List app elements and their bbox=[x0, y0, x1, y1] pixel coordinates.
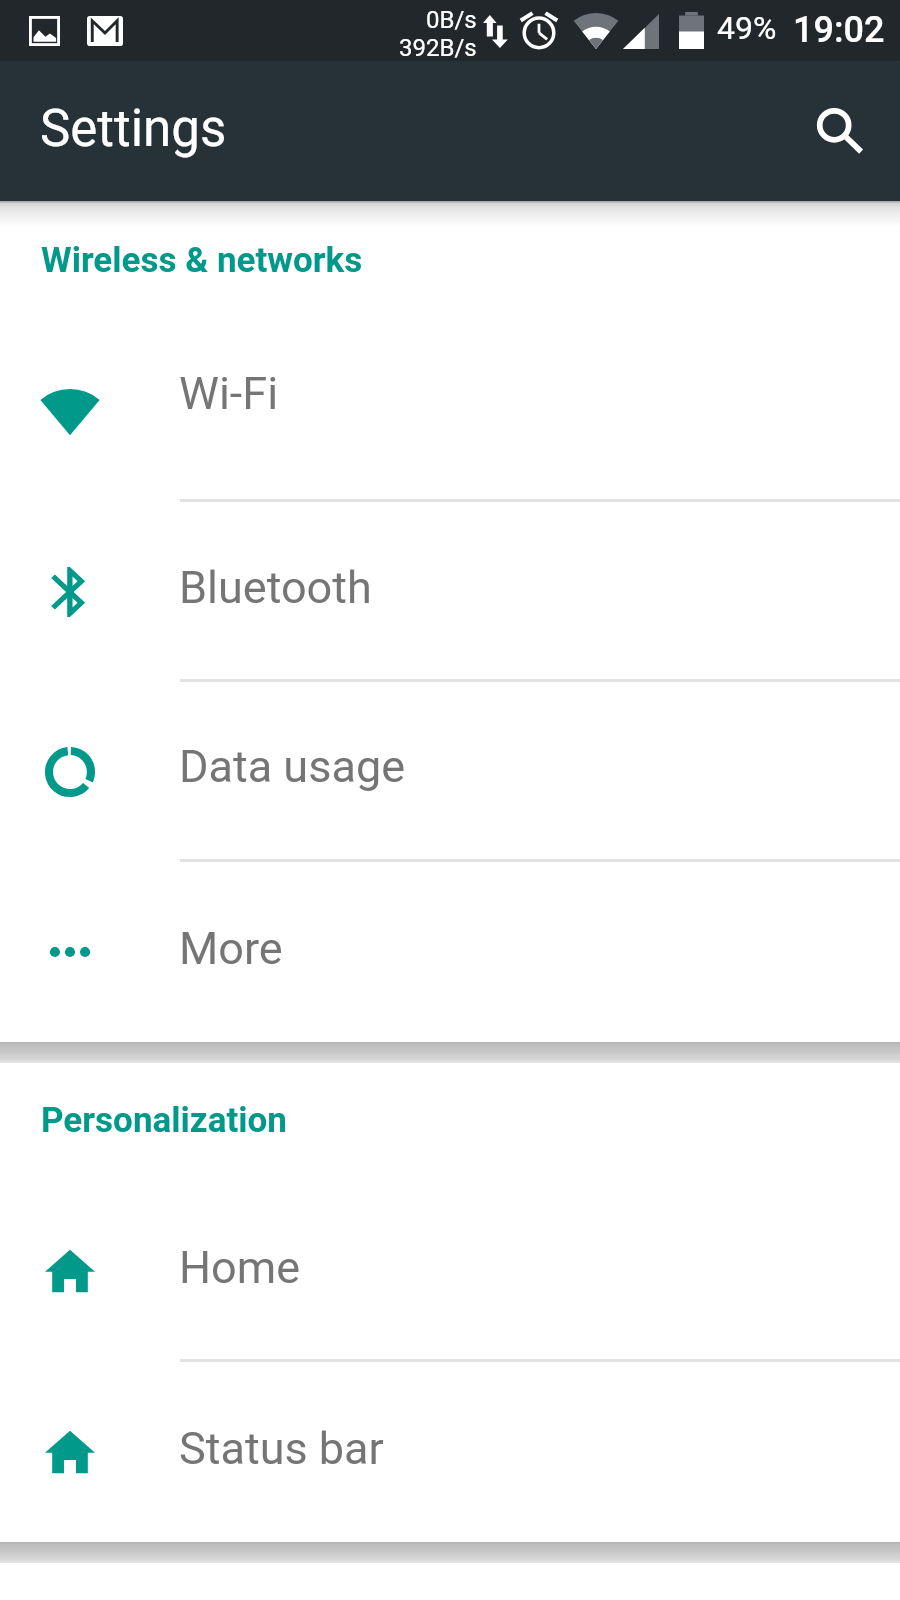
staticText: 392B/s bbox=[399, 34, 477, 62]
staticText: Settings bbox=[40, 99, 227, 159]
button[interactable]: Search bbox=[790, 82, 886, 178]
button[interactable]: Data usage bbox=[0, 681, 900, 861]
staticText: Home bbox=[179, 1241, 301, 1294]
staticText: 19:02 bbox=[793, 9, 885, 51]
button[interactable]: More bbox=[0, 861, 900, 1041]
staticText: Bluetooth bbox=[179, 561, 372, 614]
staticText: Personalization bbox=[41, 1100, 287, 1141]
staticText: Wi-Fi bbox=[179, 367, 279, 420]
staticText: 0B/s bbox=[426, 6, 477, 34]
button[interactable]: Home bbox=[0, 1181, 900, 1361]
staticText: 49% bbox=[717, 9, 777, 47]
button[interactable]: Bluetooth bbox=[0, 501, 900, 681]
staticText: Data usage bbox=[179, 740, 406, 793]
staticText: Status bar bbox=[179, 1422, 384, 1475]
staticText: More bbox=[179, 922, 283, 975]
staticText: Wireless & networks bbox=[41, 240, 363, 281]
button[interactable]: Status bar bbox=[0, 1361, 900, 1541]
button[interactable]: Wi-Fi bbox=[0, 321, 900, 501]
